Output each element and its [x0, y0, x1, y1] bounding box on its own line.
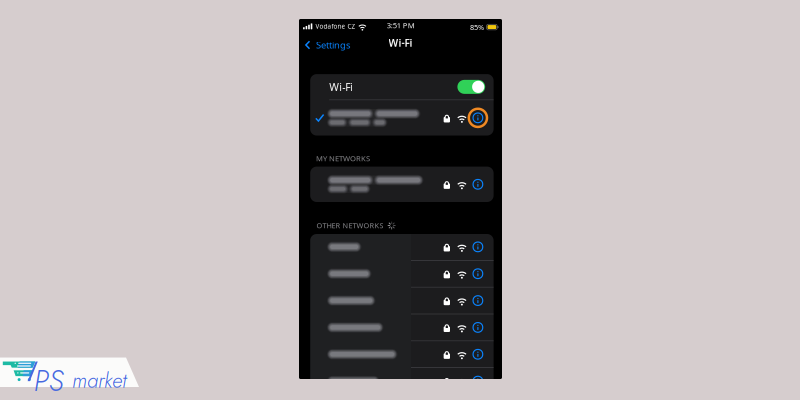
staticText: Settings — [316, 39, 350, 51]
button[interactable]: Wi-Fi on — [457, 80, 485, 94]
staticText: OTHER NETWORKS — [316, 221, 383, 230]
staticText: 3:51 PM — [387, 20, 415, 30]
button[interactable]: Wi-Fi network — [310, 368, 494, 394]
button[interactable]: Settings — [301, 34, 354, 56]
button[interactable]: Wi-Fi network — [310, 100, 494, 135]
staticText: PS — [33, 360, 63, 400]
button[interactable]: Wi-Fi network — [310, 314, 494, 341]
button[interactable]: Wi-Fi network — [310, 167, 494, 202]
button[interactable]: Wi-Fi network — [310, 341, 494, 367]
staticText: market — [72, 366, 126, 396]
staticText: Wi-Fi — [329, 80, 353, 94]
staticText: Wi-Fi — [388, 36, 412, 50]
staticText: Vodafone CZ — [315, 22, 355, 30]
staticText: MY NETWORKS — [316, 153, 370, 163]
button[interactable]: Wi-Fi network — [310, 287, 494, 314]
button[interactable]: Wi-Fi network — [310, 261, 494, 287]
button[interactable]: Wi-Fi network — [310, 234, 494, 260]
staticText: 85% — [470, 22, 484, 32]
